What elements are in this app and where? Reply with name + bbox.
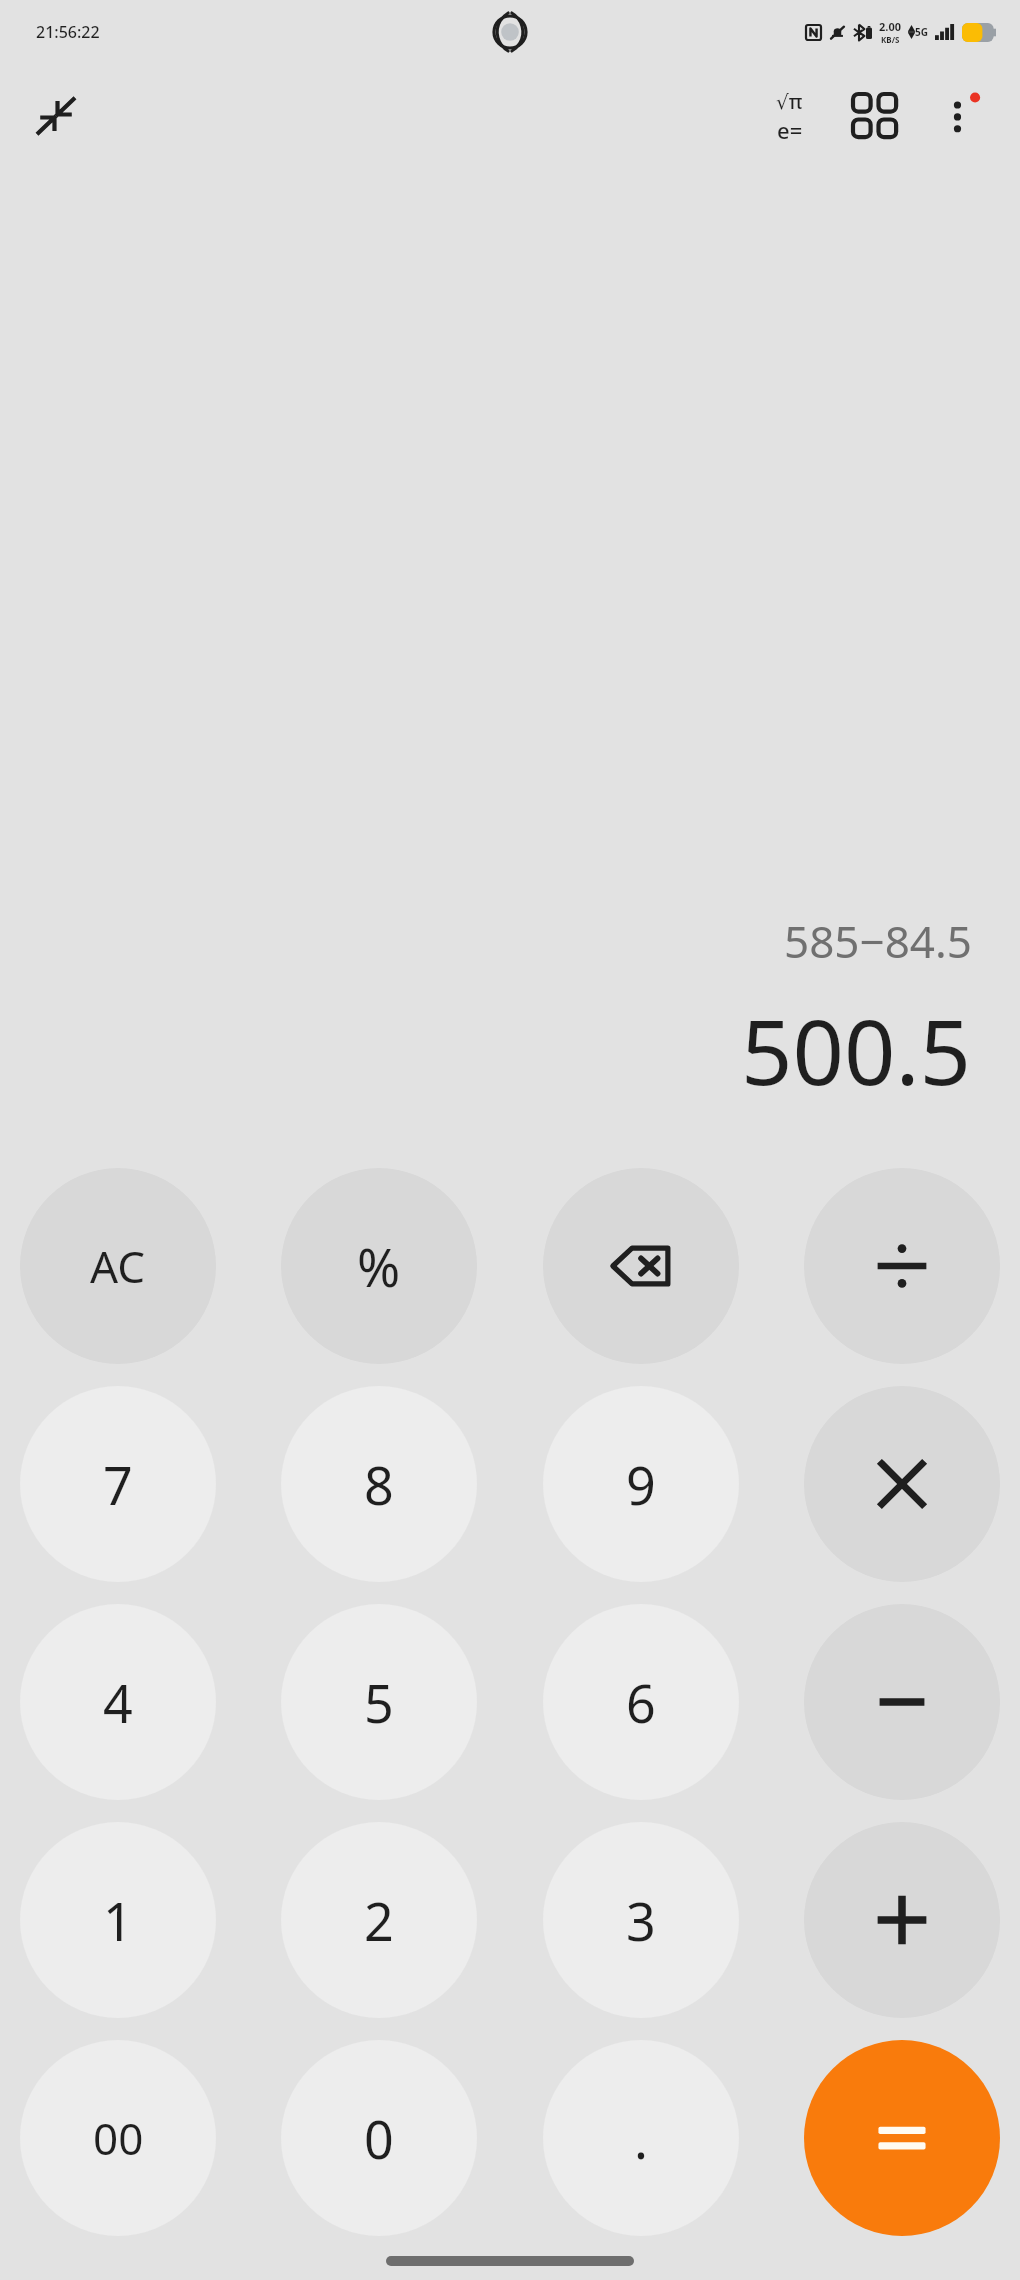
staticText: 7 — [103, 1449, 133, 1520]
staticText: 2 — [364, 1885, 394, 1956]
staticText: 8 — [364, 1449, 394, 1520]
button[interactable]: 5 — [281, 1604, 477, 1800]
staticText: . — [634, 2103, 648, 2174]
staticText: 6 — [626, 1667, 656, 1738]
button[interactable]: 9 — [543, 1386, 739, 1582]
button[interactable]: . — [543, 2040, 739, 2236]
button[interactable]: 1 — [20, 1822, 216, 2018]
button[interactable]: 00 — [20, 2040, 216, 2236]
button[interactable]: 6 — [543, 1604, 739, 1800]
button[interactable]: Scientific mode — [746, 73, 832, 159]
staticText: e= — [777, 115, 803, 145]
staticText: 500.5 — [741, 989, 972, 1112]
staticText: 9 — [626, 1449, 656, 1520]
staticText: 5G — [915, 25, 928, 39]
staticText: 5 — [364, 1667, 394, 1738]
staticText: 00 — [93, 2108, 144, 2168]
button[interactable] — [804, 1386, 1000, 1582]
button[interactable]: 4 — [20, 1604, 216, 1800]
staticText: 2.00 — [879, 19, 901, 34]
staticText: 4 — [103, 1667, 133, 1738]
staticText: 3 — [626, 1885, 656, 1956]
button[interactable] — [804, 1168, 1000, 1364]
staticText: 585−84.5 — [784, 911, 972, 971]
button[interactable] — [804, 1604, 1000, 1800]
staticText: KB/S — [881, 34, 900, 45]
button[interactable]: 8 — [281, 1386, 477, 1582]
button[interactable]: More options — [918, 73, 1004, 159]
button[interactable]: 3 — [543, 1822, 739, 2018]
staticText: % — [357, 1231, 401, 1302]
button[interactable]: Backspace — [543, 1168, 739, 1364]
button[interactable]: % — [281, 1168, 477, 1364]
button[interactable]: Grid — [832, 73, 918, 159]
staticText: 1 — [103, 1885, 133, 1956]
button[interactable]: 2 — [281, 1822, 477, 2018]
staticText: √π — [776, 88, 803, 115]
button[interactable]: Collapse — [20, 80, 92, 152]
button[interactable]: 7 — [20, 1386, 216, 1582]
button[interactable]: AC — [20, 1168, 216, 1364]
button[interactable] — [804, 2040, 1000, 2236]
staticText: AC — [90, 1236, 146, 1296]
staticText: 21:56:22 — [36, 21, 100, 43]
staticText: 0 — [364, 2103, 394, 2174]
button[interactable] — [804, 1822, 1000, 2018]
button[interactable]: 0 — [281, 2040, 477, 2236]
